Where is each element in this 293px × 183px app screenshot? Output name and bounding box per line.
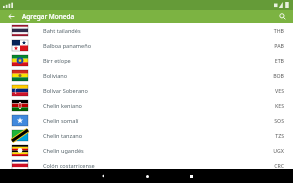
staticText: Chelín keniano	[43, 102, 274, 110]
staticText: Baht tailandés	[43, 27, 273, 35]
button[interactable]: Navigate up	[0, 10, 22, 23]
button[interactable]: Baht tailandés	[0, 23, 293, 38]
staticText: ETB	[274, 57, 284, 64]
staticText: CRC	[274, 162, 284, 169]
button[interactable]: Boliviano	[0, 68, 293, 83]
staticText: Bolívar Soberano	[43, 87, 275, 95]
button[interactable]: Search	[271, 10, 293, 23]
staticText: THB	[273, 27, 284, 34]
staticText: Colón costarricense	[43, 162, 274, 169]
staticText: Chelín tanzano	[43, 132, 275, 140]
button[interactable]: Balboa panameño	[0, 38, 293, 53]
staticText: UGX	[273, 147, 284, 154]
staticText: Boliviano	[43, 72, 273, 80]
staticText: Chelín ugandés	[43, 147, 273, 155]
button[interactable]: Chelín tanzano	[0, 128, 293, 143]
button[interactable]: Back	[90, 169, 116, 183]
button[interactable]: Colón costarricense	[0, 158, 293, 169]
button[interactable]: Chelín somalí	[0, 113, 293, 128]
button[interactable]: Bolívar Soberano	[0, 83, 293, 98]
staticText: Balboa panameño	[43, 42, 274, 50]
staticText: KES	[274, 102, 284, 109]
button[interactable]: Birr etíope	[0, 53, 293, 68]
staticText: SOS	[274, 117, 284, 124]
staticText: Birr etíope	[43, 57, 274, 65]
button[interactable]: Home	[134, 169, 160, 183]
staticText: VES	[275, 87, 284, 94]
staticText: Agregar Moneda	[22, 12, 75, 21]
staticText: TZS	[275, 132, 284, 139]
staticText: PAB	[274, 42, 284, 49]
button[interactable]: Recent apps	[178, 169, 204, 183]
staticText: BOB	[273, 72, 284, 79]
button[interactable]: Chelín ugandés	[0, 143, 293, 158]
button[interactable]: Chelín keniano	[0, 98, 293, 113]
staticText: Chelín somalí	[43, 117, 274, 125]
